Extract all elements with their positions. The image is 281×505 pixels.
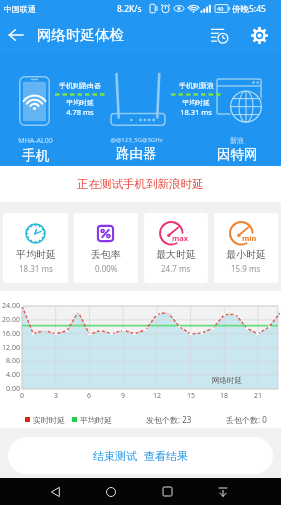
staticText: 手机到路由器 <box>59 81 101 90</box>
staticText: max <box>172 233 189 243</box>
staticText: 丢包率 <box>91 248 121 261</box>
staticText: 丢包个数: 0 <box>226 414 267 425</box>
staticText: 18.31 ms <box>180 107 212 117</box>
staticText: 发包个数: 23 <box>146 414 192 425</box>
button[interactable]: Back <box>35 478 75 505</box>
staticText: 手机 <box>22 147 49 164</box>
staticText: MHA-AL00 <box>18 136 53 146</box>
staticText: 24.7 ms <box>161 263 191 274</box>
button[interactable]: Hide keyboard <box>203 478 243 505</box>
button[interactable]: Recent apps <box>147 478 187 505</box>
staticText: @@123_5G@5GHz <box>110 136 163 144</box>
button[interactable]: 查看结果 <box>141 440 191 472</box>
staticText: 4.00 <box>6 370 20 380</box>
button[interactable]: History <box>199 17 239 53</box>
staticText: 网络时延体检 <box>37 26 124 44</box>
staticText: 最大时延 <box>156 248 196 261</box>
staticText: 正在测试手机到新浪时延 <box>77 177 204 191</box>
staticText: 18 <box>220 391 229 401</box>
staticText: 平均时延 <box>66 98 94 107</box>
button[interactable]: Back <box>0 17 32 53</box>
staticText: 6 <box>87 391 92 401</box>
staticText: 15 <box>187 391 196 401</box>
staticText: 16.00 <box>2 329 20 339</box>
staticText: 40 <box>217 5 224 12</box>
staticText: 手机到新浪 <box>179 81 214 90</box>
staticText: 新浪 <box>230 136 244 145</box>
staticText: 查看结果 <box>144 449 188 463</box>
staticText: 9 <box>121 391 126 401</box>
staticText: min <box>242 233 257 243</box>
button[interactable]: Settings <box>239 17 279 53</box>
staticText: 3 <box>54 391 59 401</box>
staticText: 实时时延 <box>33 415 65 425</box>
button[interactable]: max <box>144 213 208 283</box>
staticText: 0 <box>20 391 25 401</box>
staticText: 21 <box>254 391 263 401</box>
button[interactable]: Home <box>91 478 131 505</box>
staticText: 8.2K/s <box>117 3 142 15</box>
staticText: 12.00 <box>2 343 20 353</box>
staticText: 8.00 <box>6 356 20 366</box>
button[interactable]: 丢包率 <box>74 213 138 283</box>
staticText: 15.9 ms <box>231 263 261 274</box>
staticText: 路由器 <box>116 145 157 162</box>
staticText: 结束测试 <box>93 449 137 463</box>
staticText: 平均时延 <box>80 415 112 425</box>
staticText: 4.78 ms <box>66 107 94 117</box>
staticText: 平均时延 <box>182 98 210 107</box>
staticText: 傍晚5:45 <box>232 3 266 15</box>
staticText: 0.00% <box>95 263 118 274</box>
staticText: 中国联通 <box>4 4 36 14</box>
staticText: 18.31 ms <box>19 263 53 274</box>
staticText: 20.00 <box>2 315 20 325</box>
button[interactable]: min <box>214 213 278 283</box>
button[interactable]: 结束测试 <box>90 440 140 472</box>
staticText: 0.00 <box>6 384 20 394</box>
staticText: 因特网 <box>217 146 258 163</box>
staticText: 12 <box>153 391 162 401</box>
staticText: 最小时延 <box>226 248 266 261</box>
staticText: 网络时延 <box>212 376 242 385</box>
staticText: 平均时延 <box>16 248 56 261</box>
button[interactable]: 平均时延 <box>3 213 68 283</box>
staticText: 24.00 <box>2 301 20 311</box>
